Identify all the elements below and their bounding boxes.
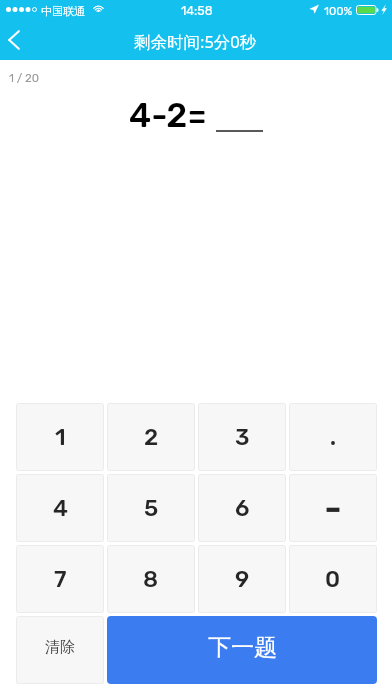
button[interactable]: 6 bbox=[198, 474, 286, 542]
staticText: 0 bbox=[325, 565, 341, 592]
button[interactable]: 7 bbox=[16, 545, 104, 613]
button[interactable]: Back bbox=[0, 21, 28, 59]
staticText: 3 bbox=[235, 423, 250, 450]
button[interactable]: 3 bbox=[198, 403, 286, 471]
button[interactable]: Decimal point bbox=[289, 403, 377, 471]
button[interactable]: 4 bbox=[16, 474, 104, 542]
staticText: 中国联通 bbox=[41, 4, 85, 18]
staticText: 2 bbox=[144, 423, 159, 450]
staticText: 100% bbox=[324, 4, 353, 18]
staticText: 1 bbox=[55, 423, 66, 450]
staticText: 5 bbox=[144, 494, 159, 521]
staticText: 下一题 bbox=[208, 633, 277, 662]
staticText: 6 bbox=[235, 494, 250, 521]
button[interactable]: 清除 bbox=[16, 616, 104, 684]
staticText: 清除 bbox=[45, 638, 75, 657]
staticText: 8 bbox=[143, 565, 159, 592]
staticText: 剩余时间:5分0秒 bbox=[134, 30, 257, 53]
staticText: 1 / 20 bbox=[9, 71, 40, 85]
button[interactable]: 8 bbox=[107, 545, 195, 613]
button[interactable]: 9 bbox=[198, 545, 286, 613]
staticText: 9 bbox=[235, 565, 250, 592]
button[interactable]: 0 bbox=[289, 545, 377, 613]
button[interactable]: 5 bbox=[107, 474, 195, 542]
staticText: 14:58 bbox=[181, 3, 213, 18]
button[interactable]: 2 bbox=[107, 403, 195, 471]
button[interactable]: Minus bbox=[289, 474, 377, 542]
button[interactable]: 1 bbox=[16, 403, 104, 471]
staticText: 4-2= bbox=[129, 95, 207, 135]
button[interactable]: 下一题 bbox=[107, 616, 377, 684]
staticText: 7 bbox=[54, 565, 67, 592]
staticText: 4 bbox=[53, 494, 68, 521]
